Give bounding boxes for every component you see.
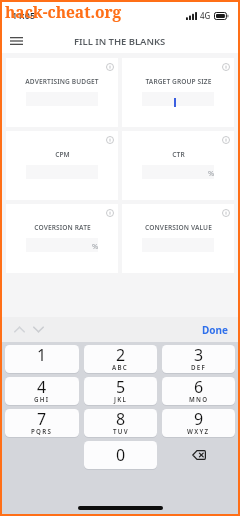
button[interactable]: 1 — [5, 345, 79, 373]
staticText: ADVERTISING BUDGET — [25, 77, 99, 86]
staticText: 2 — [116, 345, 126, 366]
button[interactable]: 2 — [84, 345, 157, 373]
button[interactable]: Info: TARGET GROUP SIZE — [122, 58, 234, 127]
button[interactable]: Info: CONVERSION VALUE — [122, 204, 234, 273]
staticText: 0 — [116, 444, 126, 466]
staticText: 9 — [194, 409, 204, 430]
staticText: WXYZ — [187, 427, 210, 435]
staticText: COVERSION RATE — [34, 223, 91, 232]
staticText: GHI — [34, 395, 50, 403]
staticText: Done — [202, 323, 229, 337]
button[interactable]: Info: CTR — [219, 133, 233, 147]
button[interactable]: % — [26, 238, 98, 252]
staticText: ABC — [112, 363, 129, 371]
staticText: % — [92, 241, 99, 251]
staticText: JKL — [114, 395, 128, 403]
staticText: CPM — [55, 150, 70, 159]
staticText: FILL IN THE BLANKS — [74, 35, 166, 48]
button[interactable]: Backspace — [162, 441, 235, 469]
staticText: 3 — [194, 345, 204, 366]
staticText: 6 — [194, 377, 204, 398]
staticText: 5 — [116, 377, 126, 398]
staticText: hack-cheat.org — [5, 1, 122, 22]
staticText: TUV — [113, 427, 129, 435]
staticText: 1 — [37, 345, 47, 366]
button[interactable]: Previous field — [11, 321, 28, 338]
staticText: MNO — [189, 395, 209, 403]
staticText: DEF — [191, 363, 207, 371]
staticText: PQRS — [31, 427, 53, 435]
button[interactable]: Info: CPM — [103, 133, 117, 147]
button[interactable]: Info: TARGET GROUP SIZE — [219, 60, 233, 74]
button[interactable]: Info: ADVERTISING BUDGET — [103, 60, 117, 74]
button[interactable]: 5 — [84, 377, 157, 405]
button[interactable]: Next field — [30, 321, 47, 338]
button[interactable]: Info: COVERSION RATE — [103, 206, 117, 220]
button[interactable]: Done — [202, 323, 229, 337]
button[interactable]: 7 — [5, 409, 79, 437]
button[interactable]: % — [142, 165, 214, 179]
button[interactable]: 8 — [84, 409, 157, 437]
button[interactable]: 0 — [84, 441, 157, 469]
staticText: 7 — [37, 409, 47, 430]
button[interactable]: 4 — [5, 377, 79, 405]
button[interactable]: Open navigation menu — [5, 30, 27, 52]
button[interactable]: 3 — [162, 345, 235, 373]
button[interactable]: Info: CPM — [6, 131, 118, 200]
button[interactable]: Info: COVERSION RATE — [6, 204, 118, 273]
button[interactable]: 9 — [162, 409, 235, 437]
staticText: TARGET GROUP SIZE — [145, 77, 212, 86]
button[interactable]: Info: CTR — [122, 131, 234, 200]
staticText: CTR — [172, 150, 185, 159]
button[interactable]: Info: CONVERSION VALUE — [219, 206, 233, 220]
button[interactable]: 6 — [162, 377, 235, 405]
staticText: 4 — [37, 377, 47, 398]
staticText: % — [208, 168, 215, 178]
staticText: 8 — [116, 409, 126, 430]
staticText: 11:05 — [12, 9, 36, 21]
button[interactable] — [142, 92, 214, 106]
staticText: CONVERSION VALUE — [145, 223, 212, 232]
button[interactable]: Info: ADVERTISING BUDGET — [6, 58, 118, 127]
staticText: 4G — [200, 10, 211, 21]
